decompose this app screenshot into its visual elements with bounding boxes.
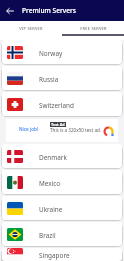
button[interactable]: VIP SERVER xyxy=(0,21,62,36)
button[interactable]: Russia xyxy=(2,66,122,90)
staticText: VIP SERVER xyxy=(19,26,43,31)
staticText: Norway xyxy=(39,49,63,58)
staticText: Denmark xyxy=(39,153,67,162)
button[interactable]: Mexico xyxy=(2,170,122,194)
staticText: Test Ad xyxy=(51,122,65,127)
staticText: Nice job! xyxy=(19,126,39,132)
button[interactable]: Denmark xyxy=(2,144,122,168)
staticText: Switzerland xyxy=(39,101,74,110)
staticText: Singapore xyxy=(39,251,70,260)
staticText: FREE SERVER xyxy=(80,26,107,31)
button[interactable]: Norway xyxy=(2,40,122,64)
staticText: Ukraine xyxy=(39,205,63,214)
staticText: Mexico xyxy=(39,179,61,188)
button[interactable]: Back xyxy=(0,0,20,21)
button[interactable]: Advertisement xyxy=(6,119,118,142)
staticText: Russia xyxy=(39,75,59,84)
staticText: Premium Servers xyxy=(22,6,77,15)
button[interactable]: Singapore xyxy=(2,248,122,261)
button[interactable]: Switzerland xyxy=(2,92,122,116)
button[interactable]: Ukraine xyxy=(2,196,122,220)
staticText: This is a 320x50 test ad. xyxy=(50,127,102,133)
staticText: Brazil xyxy=(39,231,56,240)
button[interactable]: FREE SERVER xyxy=(62,21,124,36)
button[interactable]: Brazil xyxy=(2,222,122,246)
